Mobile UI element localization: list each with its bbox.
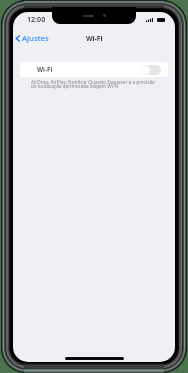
button[interactable]: Wi-Fi toggle bbox=[141, 65, 161, 75]
button[interactable]: Wi-Fi bbox=[20, 62, 168, 77]
button[interactable]: Ajustes bbox=[13, 30, 55, 47]
staticText: 12:00 bbox=[27, 14, 46, 24]
staticText: Wi-Fi bbox=[37, 65, 53, 74]
staticText: Ajustes bbox=[22, 33, 49, 44]
staticText: Wi-Fi bbox=[86, 34, 103, 43]
staticText: AirDrop, AirPlay, Notificar Quando Esque… bbox=[31, 79, 161, 90]
